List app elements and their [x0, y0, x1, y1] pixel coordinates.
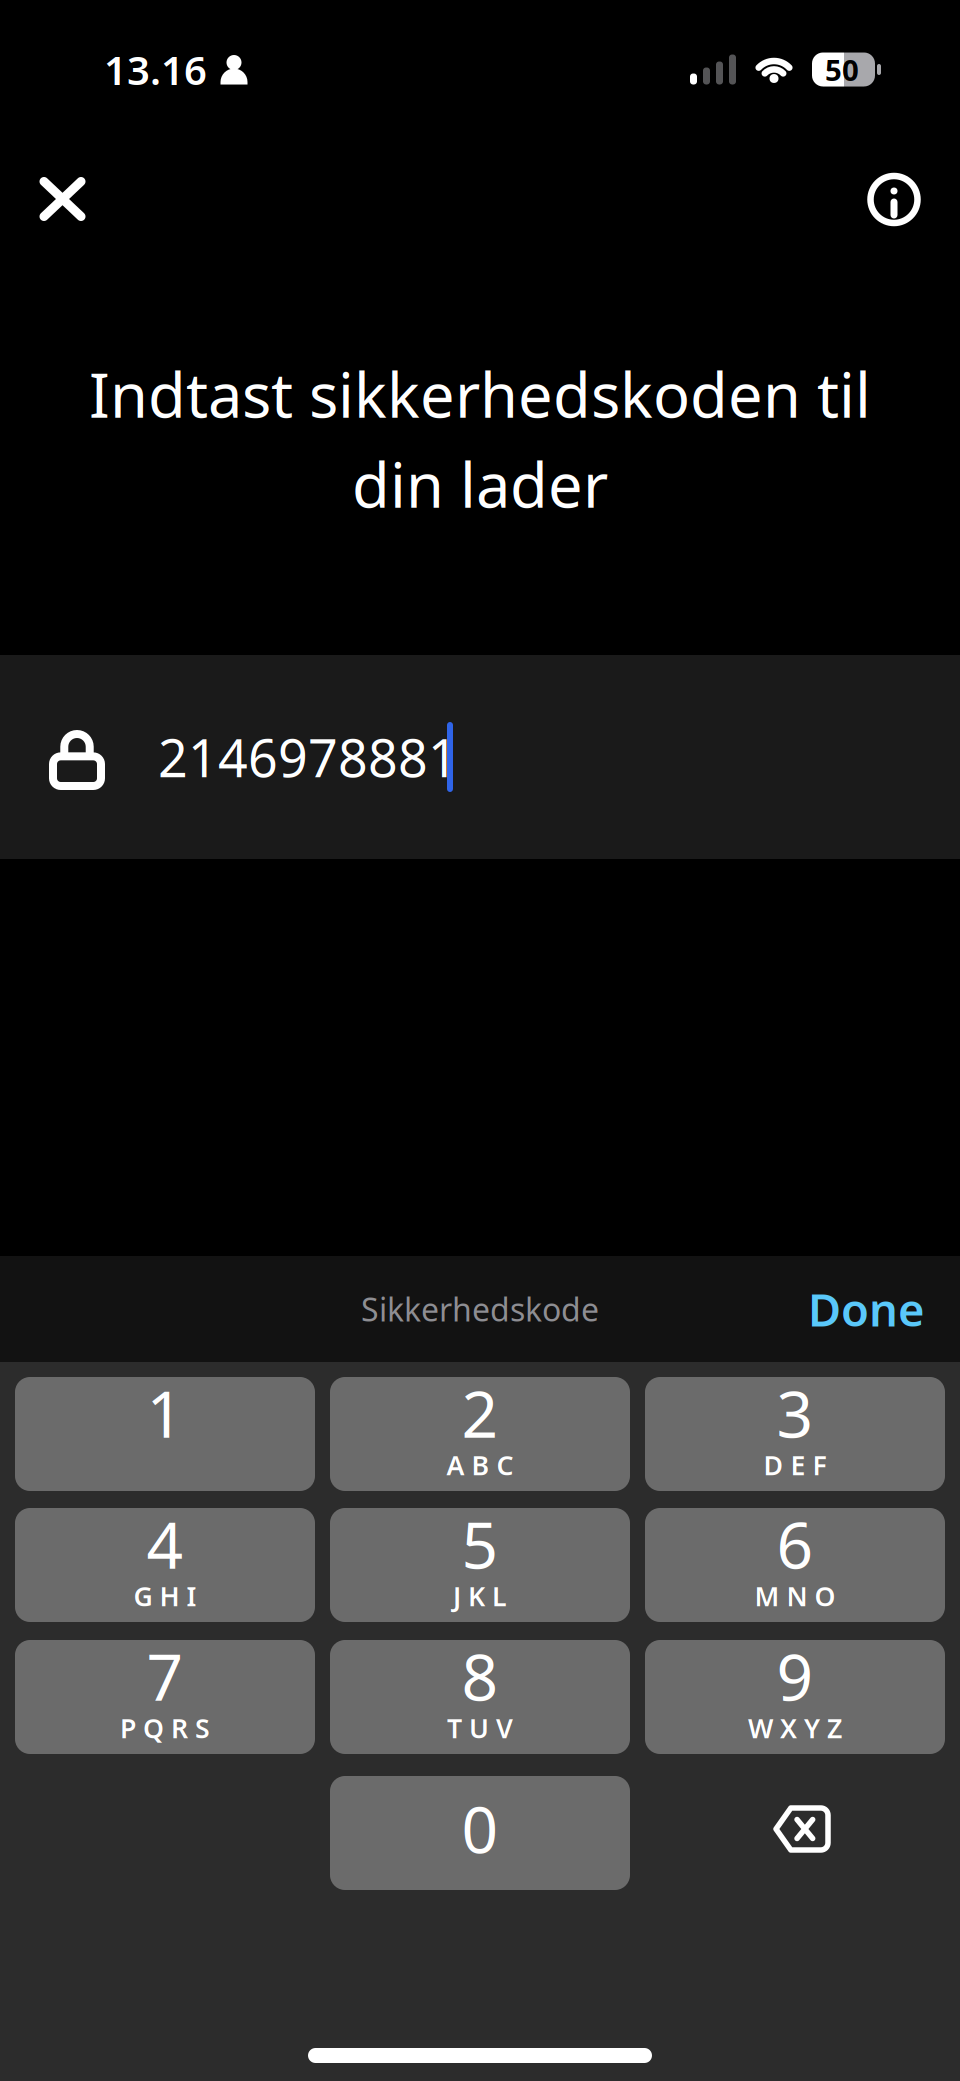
staticText: Done — [808, 1279, 925, 1339]
staticText: 13.16 — [104, 43, 207, 96]
button[interactable]: 1 — [15, 1377, 315, 1491]
button[interactable]: 6 — [645, 1508, 945, 1622]
button[interactable]: 5 — [330, 1508, 630, 1622]
staticText: 2 — [461, 1370, 498, 1455]
staticText: 3 — [776, 1370, 813, 1455]
staticText: din lader — [352, 443, 608, 525]
staticText: M N O — [754, 1578, 835, 1614]
staticText: T U V — [447, 1710, 513, 1746]
staticText: 5 — [461, 1501, 498, 1586]
button[interactable]: 3 — [645, 1377, 945, 1491]
staticText: Sikkerhedskode — [361, 1288, 599, 1330]
staticText: P Q R S — [120, 1710, 210, 1746]
staticText: 50 — [825, 50, 859, 89]
button[interactable]: 4 — [15, 1508, 315, 1622]
staticText: J K L — [453, 1578, 507, 1614]
staticText: 9 — [776, 1633, 813, 1718]
staticText: 7 — [146, 1633, 183, 1718]
staticText: 6 — [776, 1501, 813, 1586]
button[interactable]: Delete — [645, 1776, 945, 1890]
button[interactable]: 8 — [330, 1640, 630, 1754]
staticText: D E F — [763, 1447, 826, 1483]
staticText: 1 — [146, 1370, 183, 1455]
staticText: 4 — [146, 1501, 183, 1586]
button[interactable]: 7 — [15, 1640, 315, 1754]
button[interactable]: 2 — [330, 1377, 630, 1491]
staticText: 0 — [461, 1786, 498, 1871]
button[interactable]: 0 — [330, 1776, 630, 1890]
button[interactable]: 9 — [645, 1640, 945, 1754]
button[interactable]: Done — [788, 1265, 945, 1353]
button[interactable]: Close — [19, 135, 98, 218]
staticText: 2146978881 — [158, 722, 458, 792]
staticText: A B C — [446, 1447, 513, 1483]
staticText: Indtast sikkerhedskoden til — [89, 353, 871, 435]
button[interactable]: Information — [847, 127, 941, 226]
staticText: W X Y Z — [748, 1710, 842, 1746]
staticText: G H I — [133, 1578, 196, 1614]
staticText: 8 — [461, 1633, 498, 1718]
